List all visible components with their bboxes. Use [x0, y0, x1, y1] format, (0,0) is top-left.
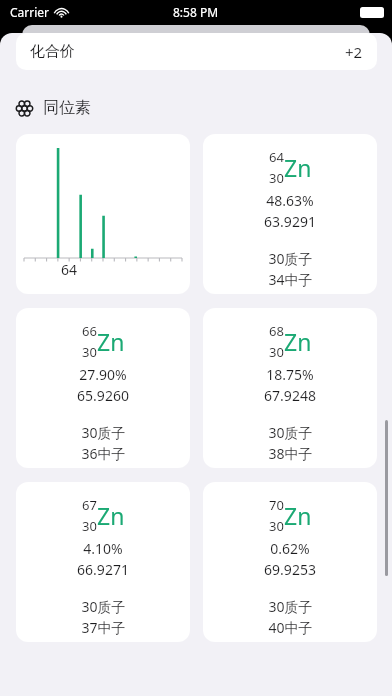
button[interactable]: 64 [203, 134, 377, 294]
staticText: Carrier [10, 4, 50, 20]
staticText: Zn [284, 152, 312, 183]
staticText: 18.75% [266, 365, 314, 384]
staticText: 27.90% [79, 365, 127, 384]
staticText: 66.9271 [77, 560, 129, 579]
staticText: 64 [269, 148, 284, 166]
staticText: 30质子 [268, 597, 313, 616]
staticText: 63.9291 [264, 212, 316, 231]
staticText: Zn [284, 326, 312, 357]
staticText: 36中子 [81, 444, 126, 463]
staticText: 30 [269, 343, 284, 361]
button[interactable]: 67 [16, 482, 190, 642]
staticText: Zn [97, 500, 125, 531]
staticText: 4.10% [83, 539, 123, 558]
button[interactable]: 66 [16, 308, 190, 468]
staticText: Zn [284, 500, 312, 531]
staticText: 70 [269, 496, 284, 514]
staticText: 30质子 [81, 423, 126, 442]
button[interactable]: 化合价 [16, 33, 377, 70]
button[interactable]: 68 [203, 308, 377, 468]
staticText: 68 [269, 322, 284, 340]
staticText: 30 [82, 517, 97, 535]
staticText: 38中子 [268, 444, 313, 463]
staticText: 8:58 PM [173, 4, 219, 20]
staticText: 69.9253 [264, 560, 316, 579]
staticText: 65.9260 [77, 386, 129, 405]
staticText: 64 [61, 260, 78, 279]
other: Isotopes [16, 100, 33, 117]
staticText: 0.62% [270, 539, 310, 558]
staticText: Zn [97, 326, 125, 357]
staticText: 67.9248 [264, 386, 316, 405]
staticText: 40中子 [268, 618, 313, 637]
staticText: 30质子 [268, 249, 313, 268]
button[interactable]: 64 [16, 134, 190, 294]
staticText: 30 [269, 517, 284, 535]
staticText: 30 [269, 169, 284, 187]
staticText: 化合价 [30, 42, 75, 61]
staticText: 37中子 [81, 618, 126, 637]
staticText: 34中子 [268, 270, 313, 289]
staticText: 30质子 [81, 597, 126, 616]
staticText: 48.63% [266, 191, 314, 210]
staticText: 同位素 [43, 98, 91, 118]
staticText: 30质子 [268, 423, 313, 442]
button[interactable]: 70 [203, 482, 377, 642]
staticText: 67 [82, 496, 97, 514]
staticText: +2 [345, 42, 363, 62]
staticText: 66 [82, 322, 97, 340]
staticText: 30 [82, 343, 97, 361]
